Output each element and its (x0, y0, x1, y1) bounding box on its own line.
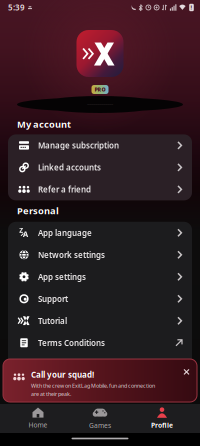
staticText: Home (28, 421, 47, 429)
staticText: ! (190, 4, 192, 11)
button[interactable]: Profile (131, 404, 193, 433)
staticText: With the crew on ExitLag Mobile, fun and… (31, 382, 155, 398)
staticText: App language (38, 227, 92, 238)
staticText: Terms Conditions (38, 337, 105, 348)
staticText: Network settings (38, 249, 105, 260)
button[interactable]: Network settings (8, 244, 192, 266)
staticText: App settings (38, 271, 86, 282)
button[interactable]: Refer a friend (8, 178, 192, 200)
button[interactable]: Home (7, 404, 69, 433)
staticText: Personal (17, 204, 59, 217)
button[interactable]: Z (8, 222, 192, 244)
staticText: Call your squad! (31, 369, 94, 380)
button[interactable]: Linked accounts (8, 156, 192, 178)
staticText: Z (19, 226, 23, 235)
button[interactable]: Dismiss (180, 363, 195, 374)
staticText: 5:39 (8, 2, 25, 13)
button[interactable]: Terms Conditions (8, 332, 192, 354)
staticText: Manage subscription (38, 140, 119, 151)
staticText: Games (89, 421, 111, 430)
button[interactable]: Privacy Policy (8, 354, 192, 376)
staticText: ~~~~~~~~~~~~~ (87, 102, 113, 107)
button[interactable]: Support (8, 288, 192, 310)
staticText: Refer a friend (38, 184, 91, 195)
button[interactable]: App settings (8, 266, 192, 288)
staticText: Support (38, 293, 68, 304)
staticText: My account (17, 118, 71, 130)
staticText: Profile (151, 421, 173, 430)
button[interactable]: Games (69, 404, 131, 433)
button[interactable]: Tutorial (8, 310, 192, 332)
staticText: A (23, 229, 29, 240)
button[interactable]: Manage subscription (8, 134, 192, 156)
staticText: Linked accounts (38, 162, 101, 173)
staticText: PRO (94, 86, 105, 93)
staticText: Privacy Policy (38, 359, 89, 370)
staticText: Tutorial (38, 315, 67, 326)
